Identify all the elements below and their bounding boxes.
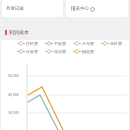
button[interactable]: 控机费 [17,41,38,46]
button[interactable]: 柴油费 [45,49,66,54]
button[interactable]: 港机费 [101,41,122,46]
button[interactable]: 伙食费 [17,49,38,54]
other: Reports [90,7,95,12]
staticText: 伙食费 [26,49,38,54]
button[interactable]: 平板费 [45,41,66,46]
button[interactable]: 报表中心 [66,0,128,17]
staticText: 控机费 [26,41,38,46]
button[interactable]: 吊车费 [73,41,94,46]
staticText: 50,000 [8,73,19,78]
staticText: 柴油费 [54,49,66,54]
staticText: 钢筋费 [82,49,94,54]
staticText: 30,000 [8,110,19,115]
button[interactable]: 利润成本 [5,29,29,35]
staticText: 报表中心 [71,6,89,12]
staticText: 吊车费 [82,41,94,46]
button[interactable]: 月度记账 [2,0,63,17]
staticText: 利润成本 [9,29,29,35]
button[interactable]: 钢筋费 [73,49,94,54]
staticText: 港机费 [110,41,122,46]
staticText: 40,000 [8,92,19,97]
staticText: 平板费 [54,41,66,46]
staticText: 月度记账 [6,6,24,12]
